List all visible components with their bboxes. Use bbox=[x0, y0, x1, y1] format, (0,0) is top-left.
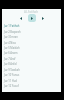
button[interactable]: Juz 8 Anfal bbox=[2, 61, 61, 66]
button[interactable]: Juz 7 Araf bbox=[2, 56, 61, 61]
button[interactable]: Juz 9 Tawbah bbox=[2, 67, 61, 72]
staticText: Juz 7 Araf bbox=[4, 57, 16, 61]
staticText: Juz 10 Yunus bbox=[4, 73, 20, 77]
button[interactable]: Juz 10 Yunus bbox=[2, 72, 61, 77]
staticText: Juz 11 Hud bbox=[4, 79, 17, 83]
staticText: Juz 4 Nisa bbox=[4, 41, 16, 45]
button[interactable]: Juz 6 Anam bbox=[2, 50, 61, 55]
button[interactable]: Juz 12 Yusuf bbox=[2, 83, 61, 88]
button[interactable]: Play bbox=[28, 14, 36, 22]
staticText: Juz 6 Anam bbox=[4, 51, 18, 55]
button[interactable]: Juz 1 Fatihah bbox=[2, 23, 61, 28]
button[interactable]: Juz 4 Nisa bbox=[2, 40, 61, 45]
staticText: Juz 1 Fatihah bbox=[4, 24, 20, 28]
staticText: Juz 3 Imran bbox=[4, 35, 18, 39]
button[interactable]: Next bbox=[40, 15, 46, 21]
button[interactable]: Juz 3 Imran bbox=[2, 34, 61, 39]
button[interactable]: Juz 11 Hud bbox=[2, 78, 61, 83]
staticText: Juz 5 Maidah bbox=[4, 46, 20, 50]
staticText: Juz 9 Tawbah bbox=[4, 68, 20, 72]
staticText: Juz 8 Anfal bbox=[4, 62, 17, 66]
staticText: Al-Fatihah bbox=[24, 10, 39, 14]
staticText: Juz 12 Yusuf bbox=[4, 84, 19, 88]
button[interactable]: Juz 5 Maidah bbox=[2, 45, 61, 50]
button[interactable]: Previous bbox=[18, 15, 24, 21]
button[interactable]: Juz 2 Baqarah bbox=[2, 29, 61, 34]
staticText: Juz 2 Baqarah bbox=[4, 30, 21, 34]
